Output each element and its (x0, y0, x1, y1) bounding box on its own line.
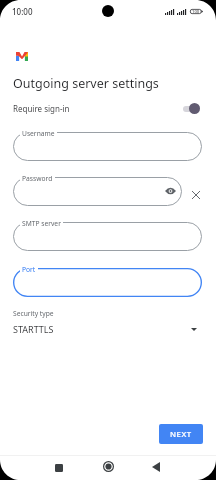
button[interactable]: Clear (188, 187, 204, 203)
staticText: NEXT (170, 429, 192, 440)
button[interactable]: Back (146, 457, 166, 477)
staticText: 100 (192, 9, 200, 14)
staticText: Password (22, 174, 53, 181)
button[interactable]: Password (13, 177, 182, 206)
staticText: SMTP server (22, 219, 61, 226)
staticText: STARTTLS (13, 323, 54, 335)
button[interactable]: Home (98, 456, 118, 476)
staticText: Require sign-in (13, 103, 70, 114)
button[interactable]: Show password (162, 183, 178, 199)
staticText: Outgoing server settings (13, 75, 159, 92)
button[interactable]: Username (13, 132, 202, 161)
button[interactable]: Require sign-in (0, 98, 216, 119)
staticText: Security type (13, 309, 54, 318)
staticText: Port (22, 265, 36, 272)
button[interactable]: NEXT (159, 424, 203, 444)
button[interactable]: Port (13, 268, 202, 297)
button[interactable]: Recents (49, 458, 69, 478)
staticText: 10:00 (12, 6, 33, 17)
button[interactable]: STARTTLS (0, 320, 216, 338)
staticText: Username (22, 129, 55, 136)
button[interactable]: SMTP server (13, 222, 202, 251)
